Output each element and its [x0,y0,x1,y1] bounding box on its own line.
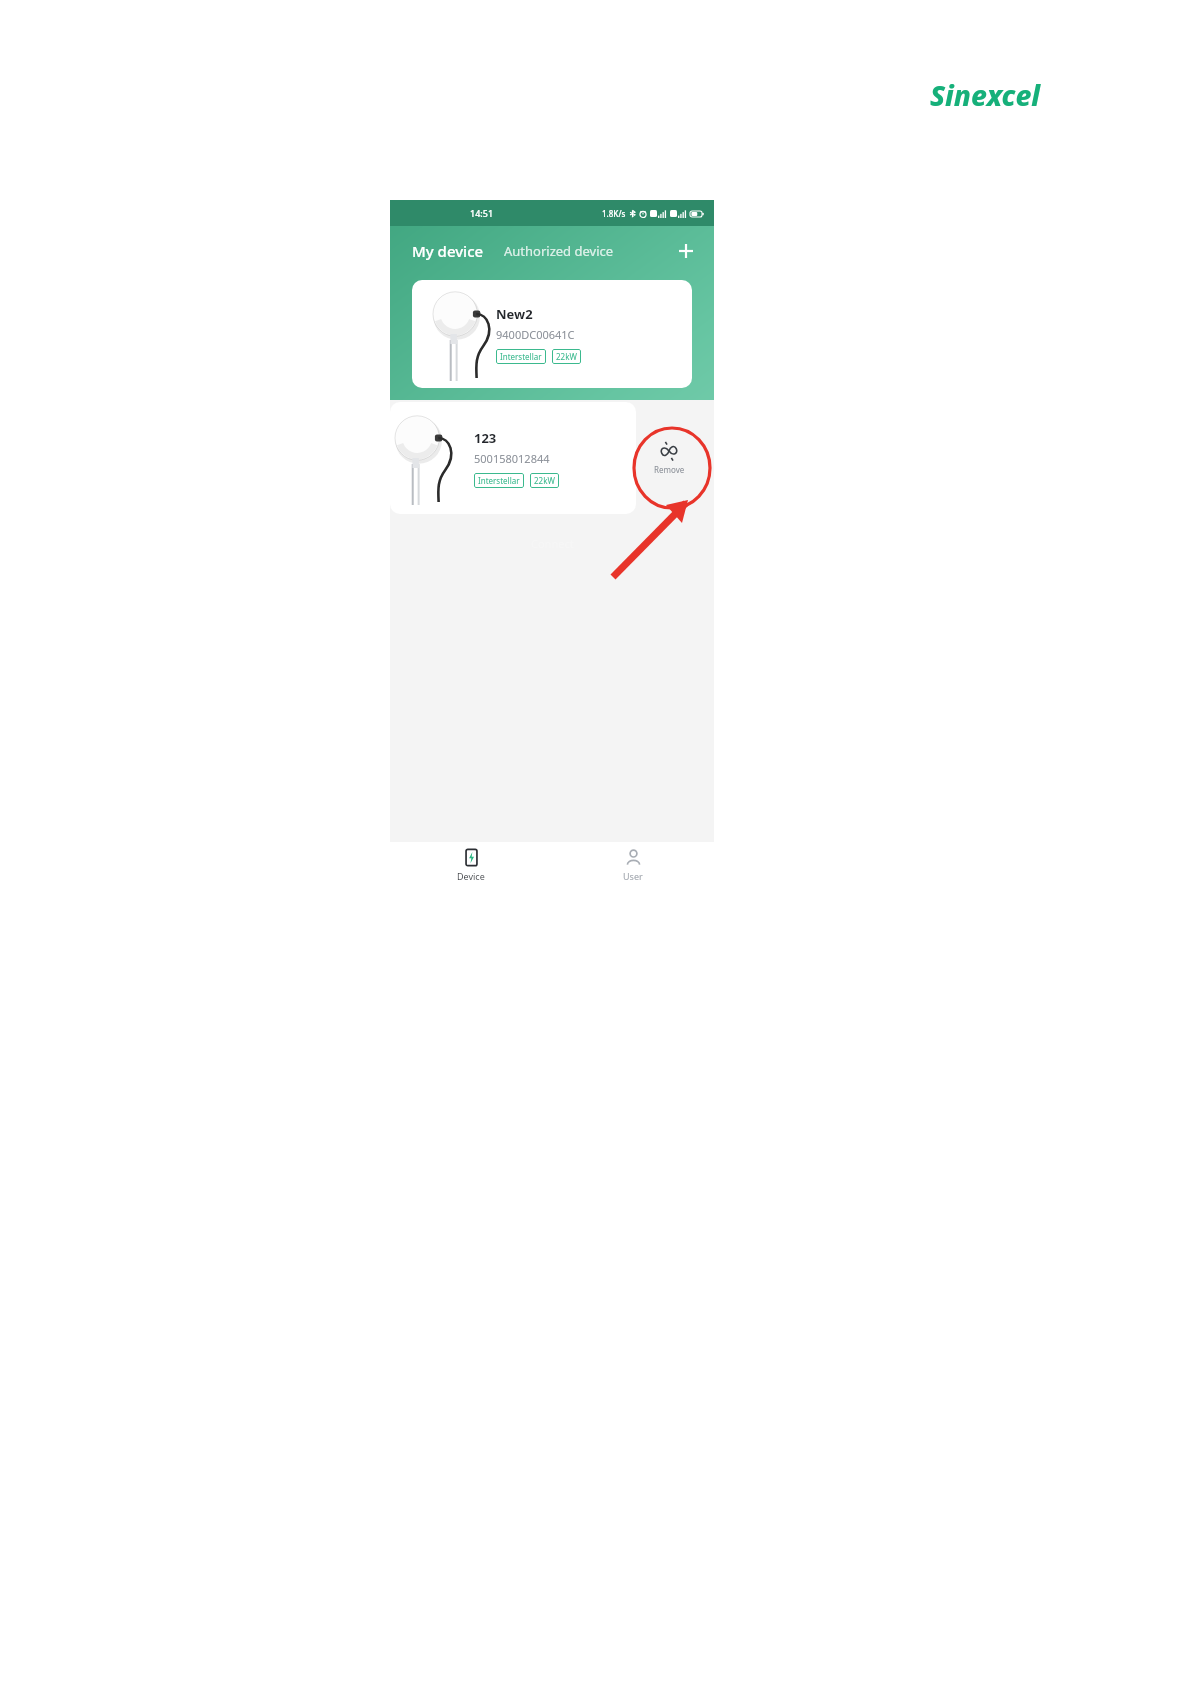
button[interactable]: 123 [390,402,636,514]
button[interactable]: New2 [412,280,692,388]
staticText: User [623,870,643,882]
staticText: 500158012844 [474,451,550,466]
staticText: 22kW [556,351,577,362]
staticText: Sinexcel [930,76,1040,114]
staticText: Device [457,870,485,882]
staticText: Interstellar [500,351,542,362]
staticText: Remove [654,464,685,475]
staticText: 1.8K/s [602,208,626,219]
button[interactable]: Device [390,842,552,892]
staticText: Interstellar [478,475,520,486]
button[interactable]: My device [412,241,484,261]
button[interactable]: Add device [674,239,698,263]
staticText: My device [412,241,484,261]
button[interactable]: User [552,842,714,892]
staticText: Authorized device [504,242,614,260]
button[interactable]: Remove device [640,441,698,475]
staticText: 9400DC00641C [496,327,575,342]
button[interactable]: Authorized device [504,242,614,260]
button[interactable]: Sinexcel logo [930,76,1040,114]
staticText: 123 [474,429,497,447]
staticText: New2 [496,305,533,323]
staticText: 14:51 [470,207,494,219]
staticText: 22kW [534,475,555,486]
